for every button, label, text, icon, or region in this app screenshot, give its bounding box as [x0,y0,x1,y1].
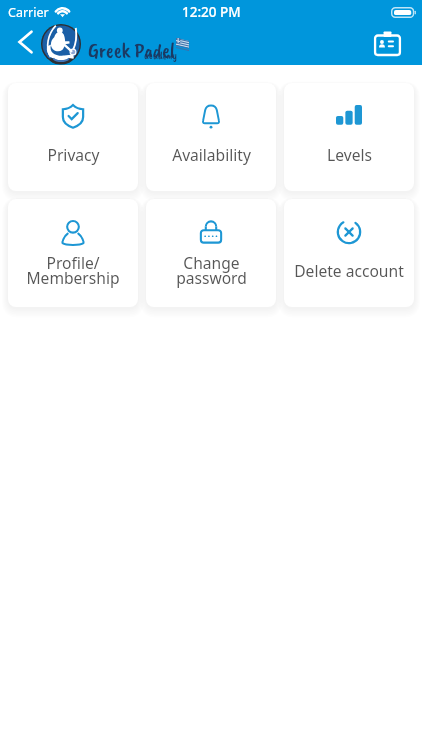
staticText: Levels [327,144,372,165]
staticText: Greek Padel [88,37,175,63]
button[interactable]: Privacy [8,83,138,191]
button[interactable]: Profile/ Membership [8,199,138,307]
staticText: 12:20 PM [182,3,241,21]
staticText: Availability [172,144,251,165]
button[interactable]: Membership card [368,24,406,62]
button[interactable]: Back [6,24,44,61]
button[interactable]: Change password [146,199,276,307]
button[interactable]: Availability [146,83,276,191]
staticText: Carrier [8,4,49,21]
staticText: Privacy [47,144,100,165]
staticText: Profile/ Membership [26,252,120,288]
staticText: Change password [176,252,247,288]
button[interactable]: Levels [284,83,414,191]
staticText: Delete account [294,260,404,281]
button[interactable]: Delete account [284,199,414,307]
staticText: academy [144,48,177,62]
